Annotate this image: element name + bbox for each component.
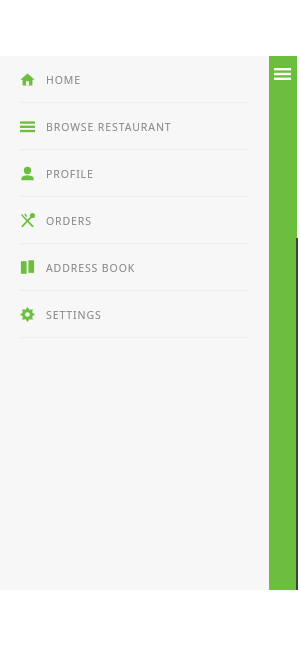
button[interactable]: HOME: [0, 56, 269, 103]
button[interactable]: ADDRESS BOOK: [0, 244, 269, 291]
staticText: ORDERS: [46, 214, 92, 228]
staticText: HOME: [46, 73, 81, 87]
button[interactable]: SETTINGS: [0, 291, 269, 338]
button[interactable]: BROWSE RESTAURANT: [0, 103, 269, 150]
button[interactable]: Open navigation menu: [269, 56, 297, 590]
button[interactable]: PROFILE: [0, 150, 269, 197]
staticText: BROWSE RESTAURANT: [46, 120, 172, 134]
button[interactable]: ORDERS: [0, 197, 269, 244]
staticText: PROFILE: [46, 167, 94, 181]
staticText: ADDRESS BOOK: [46, 261, 136, 275]
staticText: SETTINGS: [46, 308, 102, 322]
